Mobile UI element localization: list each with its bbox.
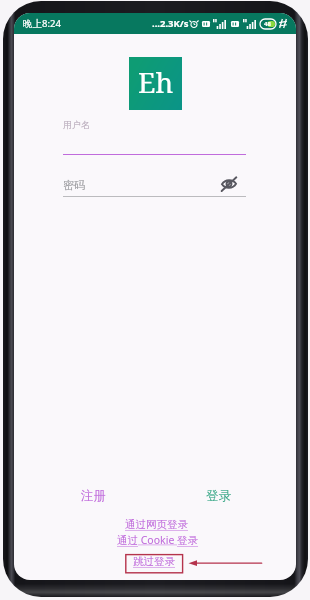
staticText: 密码 bbox=[63, 178, 85, 192]
button[interactable]: 登录 bbox=[198, 483, 239, 509]
button[interactable]: Toggle password visibility bbox=[217, 172, 241, 196]
button[interactable]: 密码 bbox=[59, 168, 247, 197]
staticText: Eh bbox=[138, 63, 174, 101]
staticText: 用户名 bbox=[63, 119, 90, 130]
button[interactable]: 通过 Cookie 登录 bbox=[113, 532, 203, 548]
button[interactable]: 用户名 bbox=[59, 108, 247, 155]
button[interactable]: 通过网页登录 bbox=[121, 517, 192, 532]
button[interactable]: 注册 bbox=[73, 483, 114, 509]
staticText: 跳过登录 bbox=[133, 555, 175, 568]
staticText: 通过网页登录 bbox=[125, 518, 188, 531]
staticText: 晚上8:24 bbox=[23, 17, 61, 30]
staticText: 注册 bbox=[81, 488, 106, 504]
staticText: 通过 Cookie 登录 bbox=[117, 533, 199, 547]
staticText: 48 bbox=[264, 20, 271, 28]
staticText: 登录 bbox=[206, 488, 231, 504]
staticText: ...2.3K/s bbox=[152, 17, 189, 30]
button[interactable]: 跳过登录 bbox=[129, 554, 179, 569]
